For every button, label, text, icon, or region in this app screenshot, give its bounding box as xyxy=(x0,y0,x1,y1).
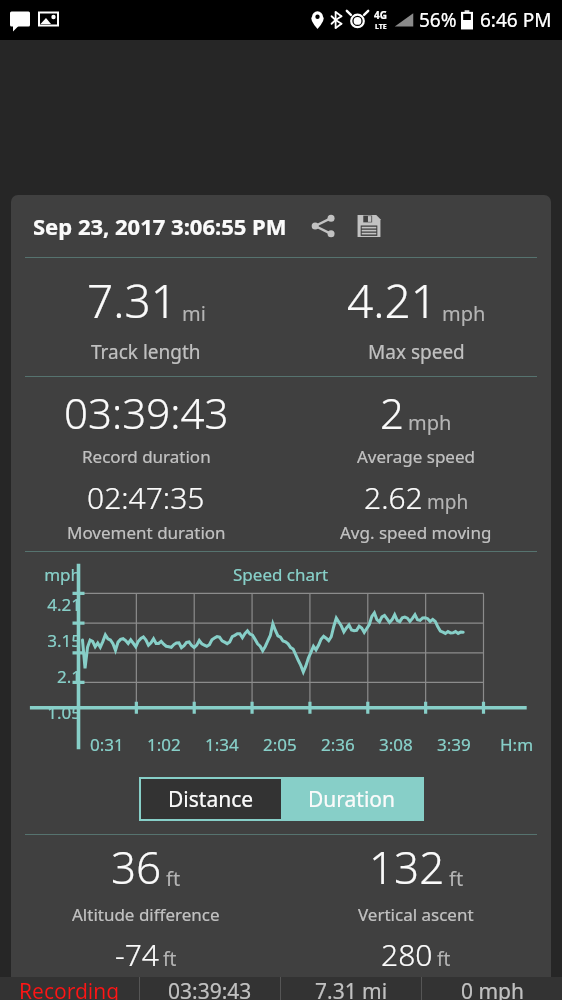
staticText: 4G xyxy=(374,8,387,22)
staticText: Track length xyxy=(91,339,201,365)
staticText: 02:47:35 xyxy=(87,477,205,518)
staticText: 6:46 PM xyxy=(480,7,552,33)
staticText: Duration xyxy=(308,785,396,814)
staticText: Altitude difference xyxy=(72,903,220,926)
staticText: 2 xyxy=(380,384,404,441)
staticText: Avg. speed moving xyxy=(340,521,492,544)
button[interactable]: Save xyxy=(347,204,391,248)
staticText: mi xyxy=(182,300,206,327)
staticText: 03:39:43 xyxy=(64,384,229,441)
staticText: Recording xyxy=(19,977,120,1000)
staticText: Record duration xyxy=(82,445,211,468)
staticText: Speed chart xyxy=(233,563,329,586)
staticText: 7.31 mi xyxy=(315,977,388,1000)
staticText: Vertical ascent xyxy=(358,903,474,926)
staticText: 36 xyxy=(111,837,162,897)
staticText: 1:02 xyxy=(147,733,181,756)
staticText: -74 xyxy=(115,934,159,975)
button[interactable]: Share xyxy=(301,204,345,248)
staticText: 0:31 xyxy=(90,733,124,756)
staticText: 56% xyxy=(419,7,457,33)
staticText: mph xyxy=(408,409,452,436)
staticText: Average speed xyxy=(357,445,475,468)
staticText: 3:08 xyxy=(379,733,413,756)
staticText: 1:34 xyxy=(205,733,239,756)
staticText: ft xyxy=(166,865,181,892)
staticText: 0 mph xyxy=(461,977,524,1000)
staticText: 4.21 xyxy=(347,269,438,332)
staticText: 2.62 xyxy=(364,477,423,518)
staticText: 2:05 xyxy=(263,733,297,756)
staticText: 3.15 xyxy=(17,629,81,652)
staticText: Distance xyxy=(168,785,254,814)
staticText: 2.1 xyxy=(17,665,81,688)
staticText: 280 xyxy=(381,934,433,975)
staticText: mph xyxy=(427,489,469,515)
staticText: 3:39 xyxy=(437,733,471,756)
button[interactable]: Distance xyxy=(141,779,281,819)
staticText: ft xyxy=(163,946,177,972)
staticText: Sep 23, 2017 3:06:55 PM xyxy=(33,211,287,241)
staticText: 03:39:43 xyxy=(168,977,252,1000)
staticText: Movement duration xyxy=(67,521,226,544)
staticText: mph xyxy=(17,563,81,586)
staticText: ft xyxy=(449,865,464,892)
staticText: mph xyxy=(442,300,486,327)
staticText: 4.21 xyxy=(17,593,81,616)
staticText: 7.31 xyxy=(87,269,178,332)
staticText: ft xyxy=(437,946,451,972)
staticText: H:m xyxy=(500,733,534,756)
staticText: 132 xyxy=(369,837,445,897)
staticText: LTE xyxy=(375,22,387,32)
staticText: Max speed xyxy=(368,339,465,365)
staticText: 1.05 xyxy=(17,701,81,724)
staticText: 2:36 xyxy=(321,733,355,756)
button[interactable]: Duration xyxy=(281,779,422,819)
